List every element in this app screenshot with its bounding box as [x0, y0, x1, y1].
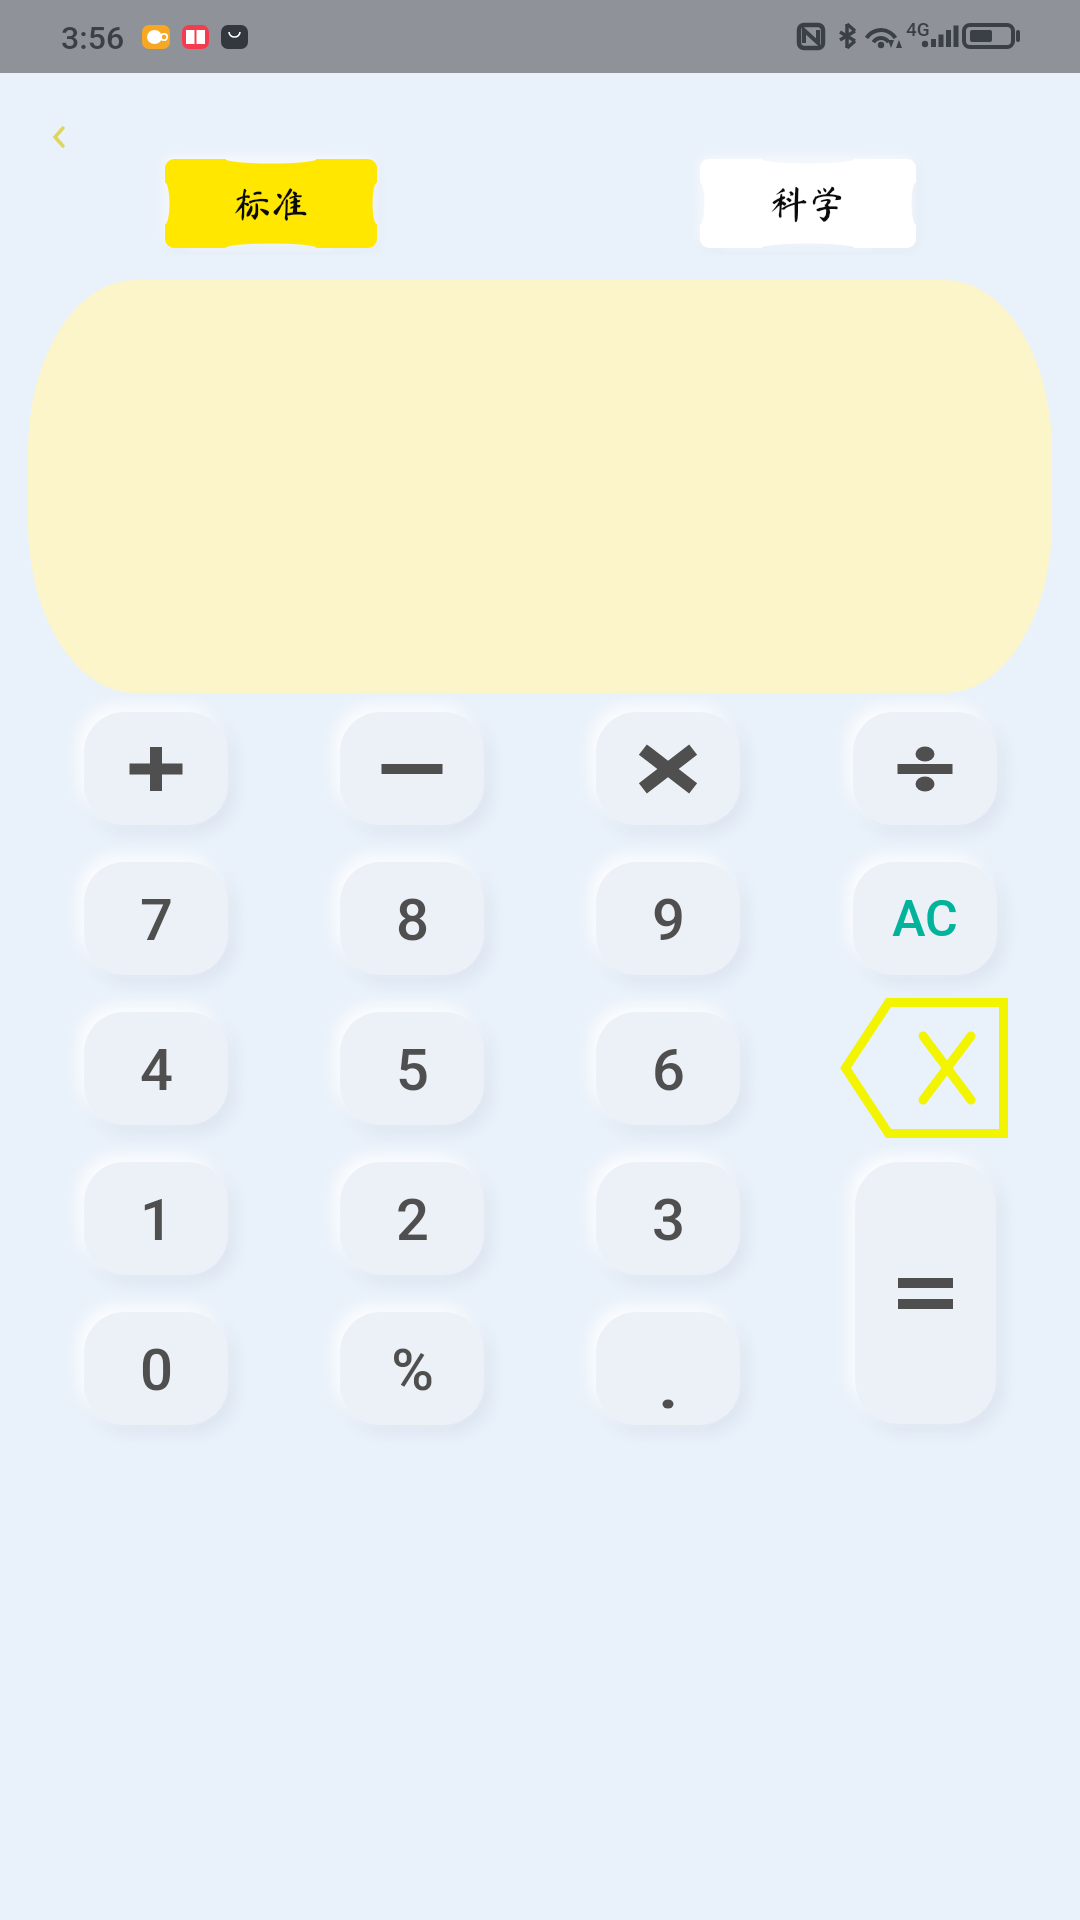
- staticText: 6: [652, 1036, 685, 1104]
- button[interactable]: 1: [84, 1162, 228, 1275]
- button[interactable]: 8: [340, 862, 484, 975]
- button[interactable]: Multiply: [596, 712, 740, 825]
- staticText: AC: [892, 890, 958, 949]
- staticText: 9: [652, 886, 685, 954]
- button[interactable]: 3: [596, 1162, 740, 1275]
- staticText: 科学: [770, 185, 847, 223]
- button[interactable]: 科学: [700, 159, 916, 248]
- button[interactable]: %: [340, 1312, 484, 1425]
- button[interactable]: 9: [596, 862, 740, 975]
- button[interactable]: 标准: [165, 159, 377, 248]
- staticText: 5: [396, 1036, 429, 1104]
- staticText: 标准: [233, 185, 310, 223]
- staticText: 1: [140, 1186, 173, 1254]
- button[interactable]: 7: [84, 862, 228, 975]
- staticText: 4: [140, 1036, 173, 1104]
- button[interactable]: Decimal point: [596, 1312, 740, 1425]
- button[interactable]: Divide: [853, 712, 997, 825]
- staticText: %: [391, 1336, 434, 1404]
- button[interactable]: 0: [84, 1312, 228, 1425]
- staticText: 2: [396, 1186, 429, 1254]
- button[interactable]: 6: [596, 1012, 740, 1125]
- staticText: 7: [140, 886, 173, 954]
- staticText: 4G: [906, 18, 930, 40]
- staticText: 3:56: [61, 19, 125, 57]
- staticText: 3: [652, 1186, 685, 1254]
- button[interactable]: 2: [340, 1162, 484, 1275]
- button[interactable]: 4: [84, 1012, 228, 1125]
- button[interactable]: Equals: [855, 1162, 996, 1424]
- button[interactable]: AC: [853, 862, 997, 975]
- button[interactable]: Backspace: [841, 998, 1008, 1138]
- staticText: 0: [140, 1336, 173, 1404]
- staticText: 8: [396, 886, 429, 954]
- button[interactable]: 5: [340, 1012, 484, 1125]
- button[interactable]: Minus: [340, 712, 484, 825]
- button[interactable]: Back: [36, 112, 86, 162]
- button[interactable]: Plus: [84, 712, 228, 825]
